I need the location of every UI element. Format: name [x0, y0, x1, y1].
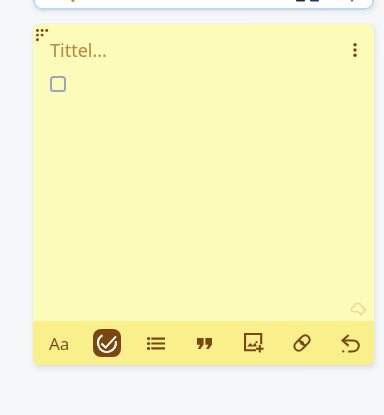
- button[interactable]: Tittel...: [50, 38, 107, 63]
- button[interactable]: Insert link: [278, 321, 326, 365]
- button[interactable]: Text format: [35, 321, 84, 365]
- button[interactable]: More options: [337, 32, 373, 68]
- staticText: Aa: [49, 332, 70, 355]
- button[interactable]: Add image: [230, 321, 278, 365]
- other: Saved to cloud: [351, 303, 366, 315]
- button[interactable]: Quote: [182, 321, 230, 365]
- button[interactable]: Search: [33, 0, 374, 10]
- button[interactable]: Undo: [326, 321, 374, 365]
- button[interactable]: Bulleted list: [133, 321, 182, 365]
- button[interactable]: Checklist: [93, 329, 121, 357]
- button[interactable]: Checkbox: [50, 76, 66, 92]
- other: Drag handle: [36, 29, 50, 43]
